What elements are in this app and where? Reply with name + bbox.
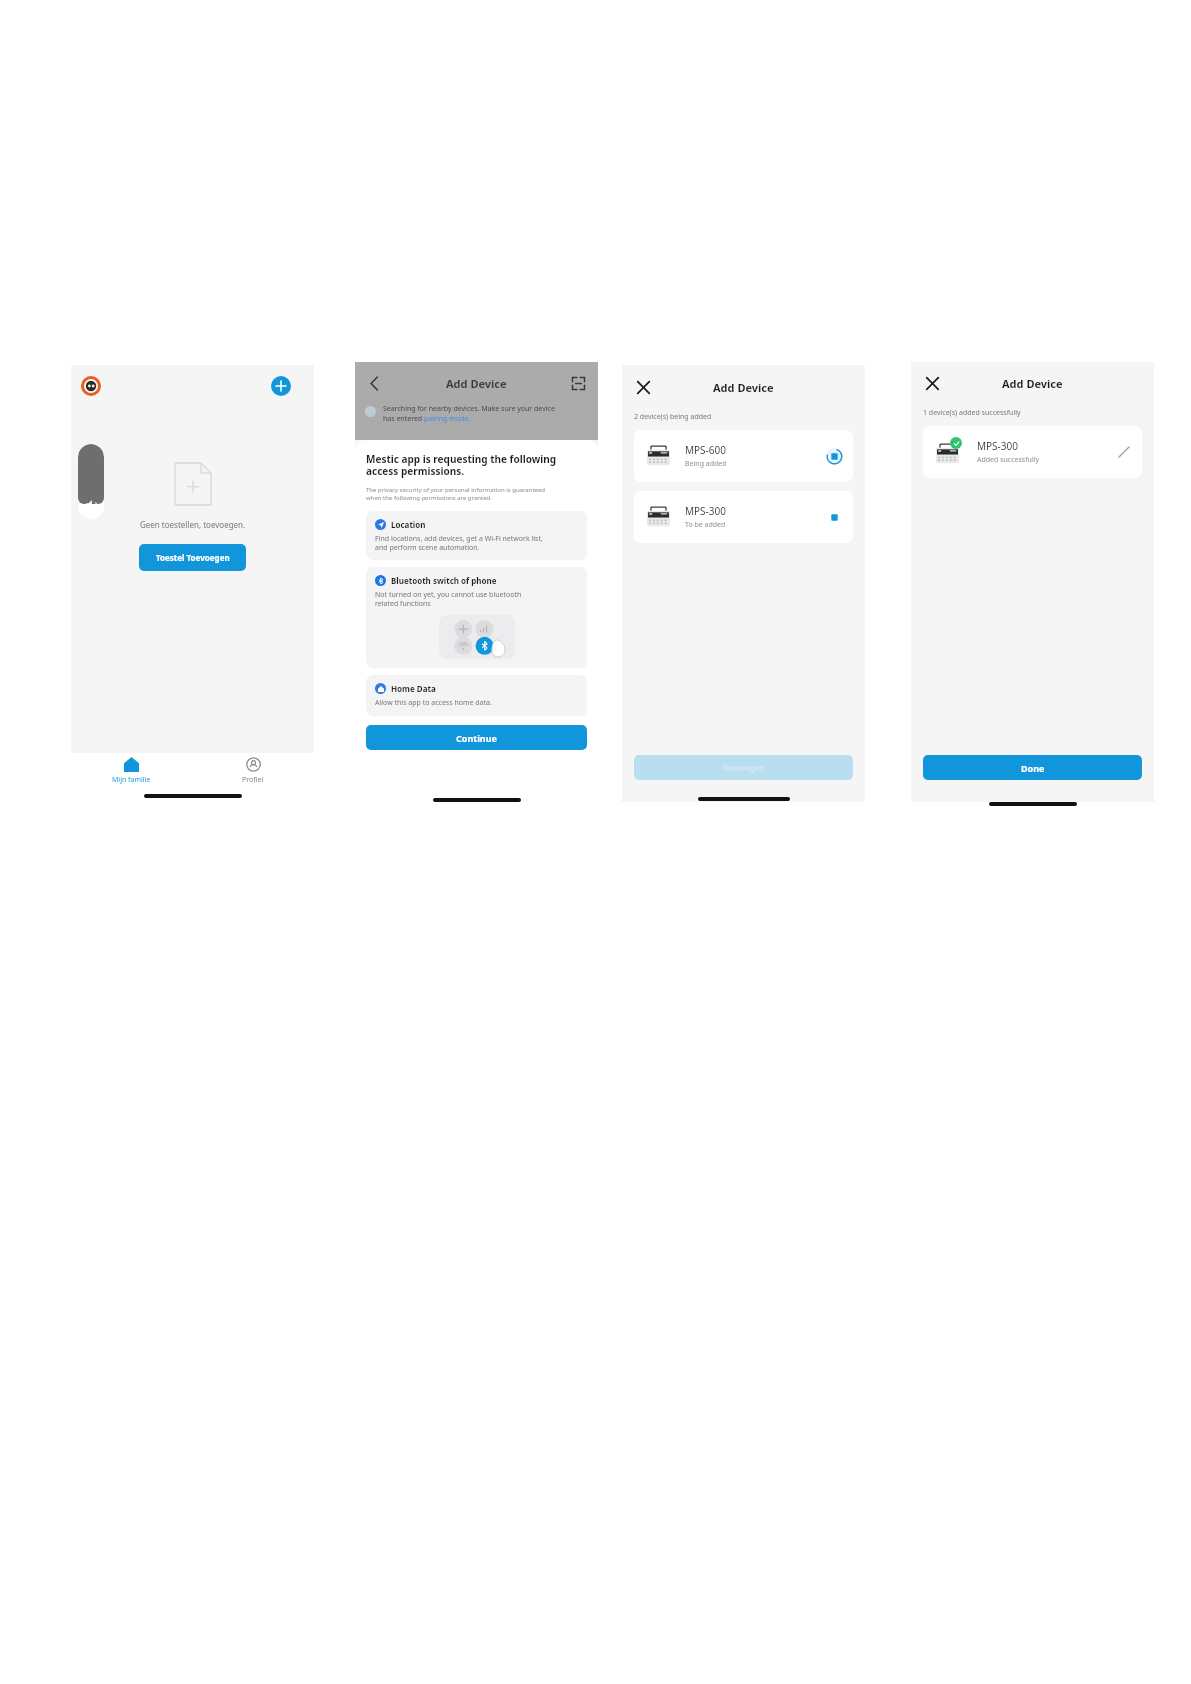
button[interactable]: Mijn familie [71,757,192,789]
staticText: Searching for nearby devices. Make sure … [383,404,555,414]
staticText: Mestic app is requesting the following a… [366,452,557,478]
button[interactable]: Continue [366,725,587,750]
staticText: Toestel Toevoegen [156,552,230,563]
button[interactable]: Toestel Toevoegen [139,544,246,571]
staticText: Geen toestellen, toevoegen. [140,519,246,530]
staticText: Continue [456,732,497,744]
button[interactable]: MPS-300 [923,426,1142,478]
staticText: To be added [685,520,726,530]
button[interactable]: Scan QR code [567,372,589,394]
staticText: MPS-300 [685,504,726,518]
button[interactable]: Close [631,375,655,399]
staticText: Add Device [446,376,507,391]
staticText: The privacy security of your personal in… [366,486,546,502]
staticText: Done [1021,762,1045,774]
staticText: Find locations, add devices, get a Wi-Fi… [375,534,543,552]
staticText: Not turned on yet, you cannot use blueto… [375,590,522,608]
button[interactable]: pairing mode. [424,414,471,424]
button[interactable]: Toevoegen [634,755,853,780]
staticText: Bluetooth switch of phone [391,575,497,586]
button[interactable]: Done [923,755,1142,780]
staticText: MPS-300 [977,439,1018,453]
staticText: Being added [685,459,727,469]
button[interactable]: MPS-600 [634,430,853,482]
staticText: Toevoegen [722,762,766,773]
button[interactable]: MPS-300 [634,491,853,543]
staticText: MPS-600 [685,443,726,457]
staticText: 2 device(s) being added [634,412,712,422]
button[interactable]: Bluetooth switch of phone [366,567,587,668]
staticText: 1 device(s) added successfully [923,408,1021,418]
button[interactable]: Rename device [1116,444,1132,460]
button[interactable]: Profiel [192,757,314,789]
staticText: Location [391,519,426,530]
button[interactable]: Back [363,372,385,394]
staticText: Mijn familie [112,775,151,785]
staticText: Allow this app to access home data. [375,698,492,708]
button[interactable]: Add [271,376,291,396]
button[interactable]: Close [920,371,944,395]
staticText: Profiel [242,775,264,785]
staticText: Add Device [713,380,774,395]
staticText: Added successfully [977,455,1040,465]
button[interactable]: Location [366,511,587,560]
staticText: has entered [383,414,424,424]
button[interactable]: Home Data [366,675,587,716]
staticText: Add Device [1002,376,1063,391]
staticText: Home Data [391,683,436,694]
